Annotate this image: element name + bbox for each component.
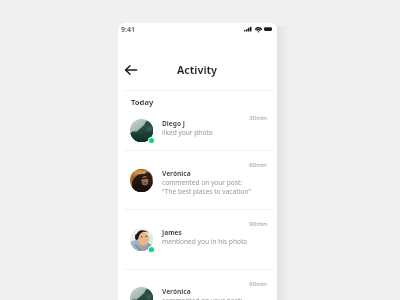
staticText: commented on your post: bbox=[162, 178, 243, 187]
staticText: 60min bbox=[118, 280, 267, 288]
staticText: liked your photo bbox=[162, 128, 213, 137]
button[interactable]: James bbox=[130, 228, 277, 255]
staticText: mentioned you in his photo bbox=[162, 237, 248, 246]
staticText: Today bbox=[131, 97, 154, 107]
staticText: James bbox=[162, 228, 182, 237]
button[interactable]: Verónica bbox=[130, 169, 277, 196]
staticText: Activity bbox=[177, 63, 218, 77]
button[interactable]: Verónica bbox=[130, 287, 277, 300]
staticText: Verónica bbox=[162, 287, 191, 296]
staticText: 30min bbox=[118, 114, 267, 122]
staticText: 60min bbox=[118, 161, 267, 169]
staticText: "The best places to vacation" bbox=[162, 187, 252, 196]
button[interactable]: Back bbox=[122, 61, 140, 79]
staticText: 90min bbox=[118, 220, 267, 228]
button[interactable]: Diego J bbox=[130, 119, 277, 146]
staticText: 9:41 bbox=[121, 25, 135, 35]
staticText: Diego J bbox=[162, 119, 185, 128]
staticText: commented on your post: bbox=[162, 296, 243, 300]
staticText: Verónica bbox=[162, 169, 191, 178]
